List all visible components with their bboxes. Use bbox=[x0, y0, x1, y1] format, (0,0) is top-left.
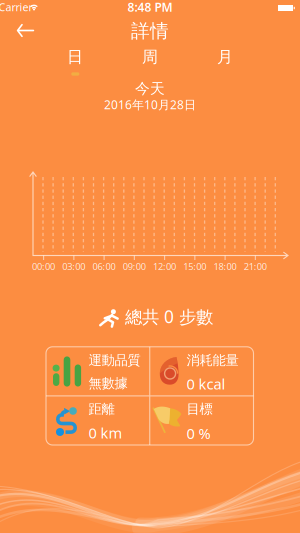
button[interactable]: 周 bbox=[127, 46, 173, 68]
staticText: 月 bbox=[217, 47, 233, 67]
staticText: 00:00 bbox=[32, 260, 55, 273]
staticText: 運動品質 bbox=[88, 352, 140, 368]
staticText: 總共 0 步數 bbox=[125, 305, 213, 328]
staticText: 2016年10月28日 bbox=[104, 96, 196, 112]
staticText: 21:00 bbox=[244, 260, 267, 273]
button[interactable]: Back bbox=[13, 20, 39, 40]
staticText: 目標 bbox=[186, 401, 212, 417]
staticText: Carrier bbox=[0, 0, 32, 14]
staticText: 18:00 bbox=[214, 260, 237, 273]
staticText: 03:00 bbox=[62, 260, 85, 273]
button[interactable]: 月 bbox=[202, 46, 248, 68]
staticText: 0 km bbox=[88, 423, 122, 443]
staticText: 無數據 bbox=[88, 375, 127, 391]
staticText: 09:00 bbox=[123, 260, 146, 273]
staticText: 消耗能量 bbox=[186, 352, 238, 368]
staticText: 8:48 PM bbox=[127, 0, 172, 15]
staticText: 今天 bbox=[135, 79, 165, 97]
staticText: 周 bbox=[142, 47, 158, 67]
staticText: 0 kcal bbox=[186, 374, 225, 394]
button[interactable]: 日 bbox=[52, 46, 98, 68]
staticText: 0 % bbox=[186, 424, 210, 443]
staticText: 距離 bbox=[88, 401, 114, 417]
staticText: 詳情 bbox=[131, 19, 169, 42]
staticText: 15:00 bbox=[183, 260, 206, 273]
staticText: 日 bbox=[67, 47, 83, 67]
staticText: 06:00 bbox=[93, 260, 116, 273]
staticText: 12:00 bbox=[153, 260, 176, 273]
